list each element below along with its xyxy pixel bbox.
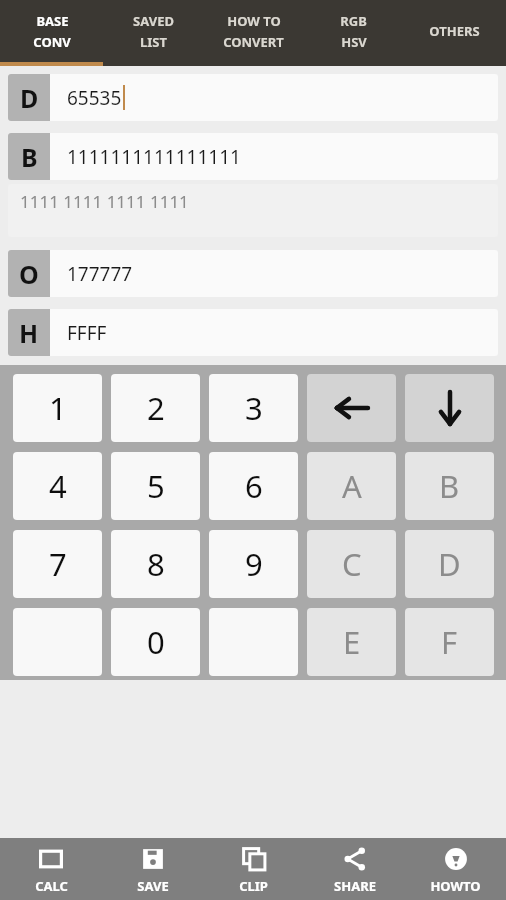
staticText: 2: [147, 387, 165, 429]
button[interactable]: 1111 1111 1111 1111: [8, 184, 498, 237]
staticText: CALC: [35, 877, 68, 895]
staticText: 4: [49, 465, 67, 507]
button[interactable]: SHARE: [304, 838, 405, 900]
staticText: C: [342, 543, 362, 585]
staticText: 65535: [67, 85, 122, 111]
button[interactable]: CLIP: [203, 838, 304, 900]
staticText: H: [19, 316, 39, 350]
button[interactable]: 1: [13, 374, 102, 442]
staticText: SHARE: [334, 877, 376, 895]
staticText: 1111111111111111: [67, 144, 241, 170]
button[interactable]: 7: [13, 530, 102, 598]
staticText: SAVED: [133, 12, 174, 30]
staticText: A: [342, 465, 362, 507]
staticText: 9: [245, 543, 263, 585]
staticText: HOWTO: [430, 877, 481, 895]
staticText: 0: [147, 621, 165, 663]
staticText: 177777: [67, 261, 133, 287]
staticText: CONV: [33, 33, 71, 51]
staticText: 7: [49, 543, 67, 585]
staticText: HSV: [341, 33, 367, 51]
button[interactable]: E: [307, 608, 396, 676]
staticText: RGB: [340, 12, 367, 30]
button[interactable]: B: [8, 133, 498, 180]
staticText: O: [19, 257, 39, 291]
button[interactable]: RGB: [303, 0, 403, 62]
staticText: B: [21, 140, 38, 174]
button[interactable]: Next field: [405, 374, 494, 442]
button[interactable]: F: [405, 608, 494, 676]
staticText: FFFF: [67, 320, 107, 346]
button[interactable]: CALC: [0, 838, 102, 900]
button[interactable]: 2: [111, 374, 200, 442]
button[interactable]: C: [307, 530, 396, 598]
staticText: 8: [147, 543, 165, 585]
button[interactable]: D: [405, 530, 494, 598]
staticText: E: [343, 621, 361, 663]
button[interactable]: 6: [209, 452, 298, 520]
button[interactable]: 0: [111, 608, 200, 676]
button[interactable]: HOWTO: [405, 838, 506, 900]
button[interactable]: OTHERS: [403, 0, 506, 62]
staticText: BASE: [36, 12, 69, 30]
staticText: D: [438, 543, 461, 585]
staticText: F: [441, 621, 458, 663]
staticText: SAVE: [137, 877, 169, 895]
button[interactable]: SAVED: [103, 0, 203, 62]
staticText: 3: [245, 387, 263, 429]
button[interactable]: 9: [209, 530, 298, 598]
button[interactable]: 8: [111, 530, 200, 598]
staticText: CLIP: [239, 877, 268, 895]
button[interactable]: Backspace: [307, 374, 396, 442]
staticText: OTHERS: [429, 22, 480, 40]
button[interactable]: B: [405, 452, 494, 520]
staticText: B: [439, 465, 460, 507]
staticText: D: [20, 81, 39, 115]
staticText: 5: [147, 465, 165, 507]
button[interactable]: BASE: [0, 0, 103, 62]
staticText: 6: [245, 465, 263, 507]
staticText: 1: [49, 387, 67, 429]
button[interactable]: SAVE: [102, 838, 203, 900]
staticText: CONVERT: [223, 33, 284, 51]
staticText: LIST: [140, 33, 167, 51]
button[interactable]: 4: [13, 452, 102, 520]
button[interactable]: 5: [111, 452, 200, 520]
button[interactable]: 3: [209, 374, 298, 442]
button[interactable]: O: [8, 250, 498, 297]
button[interactable]: A: [307, 452, 396, 520]
button[interactable]: HOW TO: [203, 0, 303, 62]
button[interactable]: D: [8, 74, 498, 121]
button[interactable]: H: [8, 309, 498, 356]
staticText: HOW TO: [227, 12, 281, 30]
staticText: 1111 1111 1111 1111: [20, 190, 189, 213]
